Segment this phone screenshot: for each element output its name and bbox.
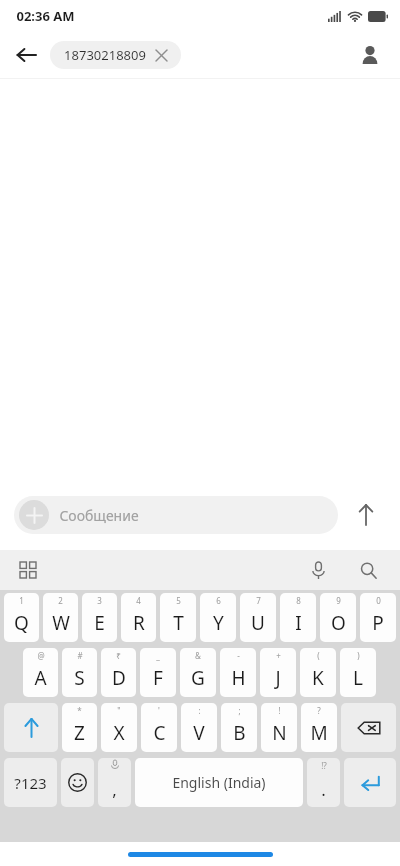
staticText: 4 [136,595,141,606]
staticText: 7 [256,595,261,606]
staticText: ; [238,705,241,716]
button[interactable]: 1 [4,593,39,642]
button[interactable]: Voice input [302,554,334,586]
staticText: W [52,610,70,636]
staticText: 6 [216,595,221,606]
button[interactable]: !? [307,758,340,807]
staticText: N [272,720,287,746]
staticText: J [275,665,281,691]
button[interactable]: _ [140,648,176,697]
button[interactable]: " [101,703,137,752]
staticText: - [237,650,240,661]
button[interactable]: 3 [82,593,117,642]
button[interactable]: 18730218809 [50,41,181,69]
staticText: C [153,720,166,746]
button[interactable]: 4 [121,593,156,642]
button[interactable]: @ [23,648,58,697]
staticText: _ [156,650,160,661]
staticText: 0 [376,595,381,606]
staticText: G [191,665,205,691]
staticText: I [295,610,302,636]
staticText: 1 [19,595,24,606]
button[interactable]: 6 [200,593,236,642]
staticText: @ [37,650,45,661]
staticText: U [251,610,265,636]
staticText: # [77,650,83,661]
button[interactable]: ? [301,703,337,752]
staticText: , [112,778,117,801]
button[interactable]: ( [300,648,336,697]
button[interactable]: 7 [240,593,276,642]
staticText: H [231,665,246,691]
staticText: M [310,720,328,746]
button[interactable]: Backspace [341,703,396,752]
staticText: V [193,720,205,746]
staticText: " [117,705,121,716]
button[interactable]: Search [352,554,384,586]
staticText: ?123 [14,773,47,793]
staticText: . [321,778,326,801]
staticText: Q [14,610,29,636]
button[interactable]: ; [221,703,257,752]
button[interactable]: Emoji [61,758,94,807]
staticText: & [195,650,201,661]
button[interactable]: 8 [280,593,316,642]
staticText: S [74,665,85,691]
staticText: 18730218809 [64,46,146,64]
staticText: ? [317,705,321,716]
button[interactable]: ₹ [101,648,136,697]
staticText: R [133,610,145,636]
staticText: O [331,610,346,636]
staticText: ₹ [116,650,121,661]
button[interactable]: 5 [160,593,196,642]
staticText: Z [74,720,85,746]
button[interactable]: Сообщение [14,496,338,534]
staticText: E [94,610,105,636]
staticText: ) [357,650,360,661]
button[interactable]: # [62,648,97,697]
staticText: K [312,665,324,691]
staticText: 8 [296,595,301,606]
staticText: 9 [336,595,341,606]
staticText: B [233,720,246,746]
button[interactable]: - [220,648,256,697]
button[interactable]: Shift [4,703,58,752]
button[interactable]: ) [340,648,376,697]
button[interactable]: : [181,703,217,752]
staticText: P [372,610,384,636]
button[interactable]: + [260,648,296,697]
button[interactable]: Clipboard [12,554,44,586]
staticText: English (India) [172,773,266,792]
button[interactable]: Back [8,37,44,73]
button[interactable]: 9 [320,593,356,642]
button[interactable]: ! [261,703,297,752]
staticText: 3 [97,595,102,606]
staticText: !? [321,760,327,771]
button[interactable]: Send [346,495,386,535]
staticText: ! [278,705,281,716]
staticText: : [198,705,201,716]
staticText: 2 [58,595,63,606]
button[interactable]: 0 [360,593,396,642]
staticText: A [34,665,47,691]
button[interactable]: ' [141,703,177,752]
staticText: 5 [176,595,181,606]
staticText: ( [317,650,320,661]
staticText: Сообщение [59,506,139,525]
button[interactable]: Enter [344,758,396,807]
button[interactable]: , [98,758,131,807]
button[interactable]: ?123 [4,758,57,807]
button[interactable]: 2 [43,593,78,642]
staticText: L [353,665,363,691]
button[interactable]: English (India) [135,758,303,807]
button[interactable]: & [180,648,216,697]
staticText: + [276,650,281,661]
staticText: D [112,665,126,691]
staticText: F [153,665,163,691]
button[interactable]: Contact [352,37,388,73]
button[interactable]: * [62,703,97,752]
staticText: Y [213,610,224,636]
staticText: T [173,610,184,636]
staticText: * [77,705,82,716]
staticText: ' [158,705,160,716]
